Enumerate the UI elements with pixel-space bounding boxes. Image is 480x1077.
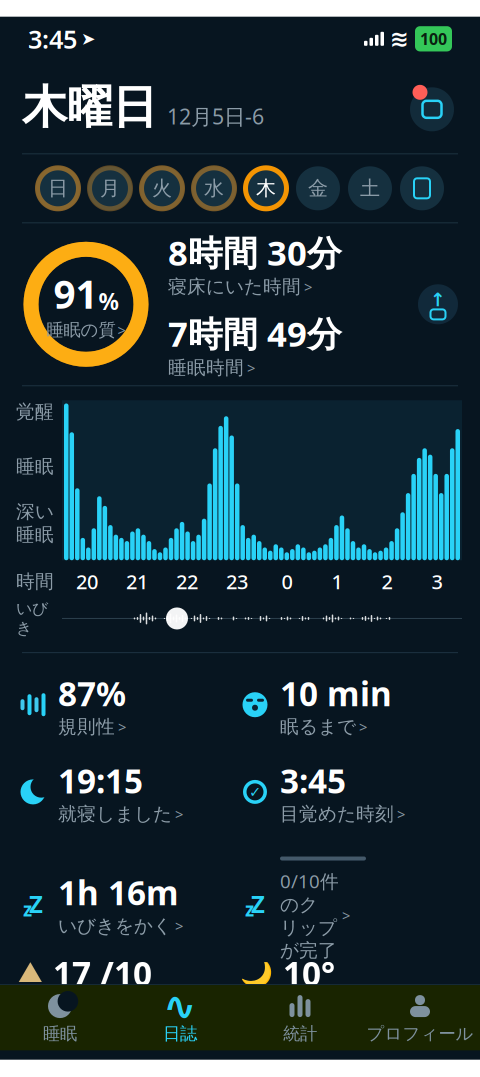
- button[interactable]: 木: [240, 162, 292, 214]
- staticText: プロフィール: [366, 1023, 473, 1044]
- staticText: 統計: [283, 1023, 317, 1044]
- staticText: 木曜日: [22, 80, 157, 135]
- button[interactable]: 土: [344, 162, 396, 214]
- staticText: %: [98, 286, 118, 316]
- staticText: 眠るまで: [280, 715, 356, 738]
- staticText: 火: [152, 176, 172, 201]
- button[interactable]: 金: [292, 162, 344, 214]
- staticText: 水: [204, 176, 224, 201]
- staticText: 91: [53, 268, 97, 319]
- button[interactable]: z: [240, 845, 462, 962]
- button[interactable]: ✓: [240, 758, 462, 825]
- staticText: >: [397, 804, 405, 824]
- button[interactable]: 19:15: [18, 758, 240, 825]
- staticText: いびきをかく: [58, 914, 172, 937]
- button[interactable]: 7時間 49分: [168, 310, 342, 379]
- staticText: 17 /10: [53, 951, 152, 995]
- staticText: 睡眠: [16, 455, 54, 478]
- button[interactable]: 91: [18, 236, 154, 372]
- staticText: ≋: [390, 26, 409, 52]
- staticText: ↑: [430, 289, 446, 310]
- staticText: 1h 16m: [58, 870, 179, 914]
- staticText: 21: [126, 568, 148, 595]
- staticText: >: [342, 906, 350, 925]
- staticText: 0/10件のクリップが完了: [280, 868, 339, 962]
- staticText: ∿: [163, 983, 197, 1029]
- staticText: 金: [308, 176, 328, 201]
- staticText: 3:45: [280, 758, 346, 803]
- staticText: 10°: [283, 951, 335, 995]
- staticText: >: [117, 320, 125, 340]
- staticText: >: [175, 916, 183, 936]
- staticText: 目覚めた時刻: [280, 803, 394, 825]
- staticText: 覚醒: [16, 400, 54, 423]
- staticText: 睡眠時間: [168, 356, 244, 379]
- staticText: >: [118, 717, 126, 737]
- staticText: 10 min: [280, 671, 392, 715]
- staticText: 0: [281, 568, 292, 595]
- staticText: z: [23, 897, 32, 922]
- button[interactable]: 共有: [414, 280, 462, 328]
- staticText: >: [175, 804, 183, 824]
- staticText: 2: [381, 568, 392, 595]
- button[interactable]: z: [18, 870, 240, 937]
- staticText: 日: [48, 176, 68, 201]
- staticText: 8時間 30分: [168, 229, 342, 275]
- staticText: 寝床にいた時間: [168, 275, 301, 298]
- staticText: 土: [360, 176, 380, 201]
- staticText: 日誌: [163, 1023, 197, 1044]
- staticText: 87%: [58, 671, 126, 715]
- staticText: 22: [176, 568, 198, 595]
- staticText: 12月5日-6: [167, 102, 264, 130]
- staticText: >: [359, 717, 367, 737]
- staticText: >: [247, 358, 255, 377]
- staticText: Z: [29, 888, 43, 920]
- staticText: 100: [420, 28, 447, 49]
- staticText: 1: [331, 568, 342, 595]
- staticText: 月: [100, 176, 120, 201]
- button[interactable]: メモ: [396, 162, 448, 214]
- staticText: ✓: [249, 784, 261, 800]
- staticText: 19:15: [58, 758, 143, 803]
- button[interactable]: 統計: [240, 985, 360, 1050]
- staticText: 3:45: [28, 22, 77, 56]
- staticText: 時間: [16, 570, 54, 593]
- button[interactable]: 10 min: [240, 671, 462, 738]
- staticText: 規則性: [58, 715, 115, 738]
- button[interactable]: カレンダー: [406, 83, 458, 135]
- staticText: 木: [256, 176, 276, 201]
- staticText: >: [304, 277, 312, 297]
- staticText: 20: [76, 568, 98, 595]
- staticText: ➤: [81, 29, 96, 49]
- staticText: 23: [226, 568, 248, 595]
- staticText: 睡眠: [16, 523, 54, 546]
- staticText: 🌙: [240, 958, 273, 988]
- staticText: 深い: [16, 500, 54, 523]
- staticText: Z: [251, 888, 265, 920]
- staticText: 睡眠の質: [46, 319, 115, 341]
- staticText: 睡眠: [43, 1023, 77, 1044]
- staticText: ⛰: [18, 959, 43, 987]
- button[interactable]: 87%: [18, 671, 240, 738]
- button[interactable]: 日: [32, 162, 84, 214]
- button[interactable]: 8時間 30分: [168, 229, 342, 298]
- button[interactable]: 水: [188, 162, 240, 214]
- button[interactable]: プロフィール: [360, 985, 480, 1050]
- staticText: 就寝しました: [58, 803, 172, 825]
- button[interactable]: ∿: [120, 985, 240, 1050]
- staticText: いびき: [16, 599, 48, 638]
- button[interactable]: 睡眠: [0, 985, 120, 1050]
- staticText: z: [245, 897, 254, 922]
- staticText: 3: [431, 568, 442, 595]
- button[interactable]: 月: [84, 162, 136, 214]
- staticText: 7時間 49分: [168, 310, 342, 356]
- button[interactable]: 火: [136, 162, 188, 214]
